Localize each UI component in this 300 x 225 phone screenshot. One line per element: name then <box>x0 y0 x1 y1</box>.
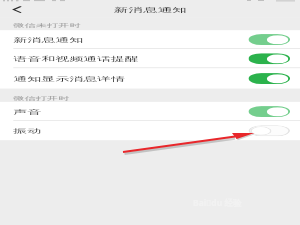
button[interactable]: Back <box>0 1 34 18</box>
button[interactable]: 声音 <box>0 102 300 121</box>
staticText: 声音 <box>13 108 42 115</box>
button[interactable]: 振动 <box>0 121 300 140</box>
staticText: 新消息通知 <box>13 36 83 43</box>
staticText: 微信打开时 <box>13 95 70 101</box>
staticText: 微信未打开时 <box>13 22 81 28</box>
button[interactable]: 新消息通知 <box>0 30 300 49</box>
staticText: 语音和视频通话提醒 <box>13 55 140 62</box>
staticText: 振动 <box>13 127 42 135</box>
button[interactable]: 通知显示消息详情 <box>0 68 300 89</box>
button[interactable]: 语音和视频通话提醒 <box>0 49 300 68</box>
staticText: 通知显示消息详情 <box>13 75 125 82</box>
staticText: 新消息通知 <box>114 6 187 13</box>
